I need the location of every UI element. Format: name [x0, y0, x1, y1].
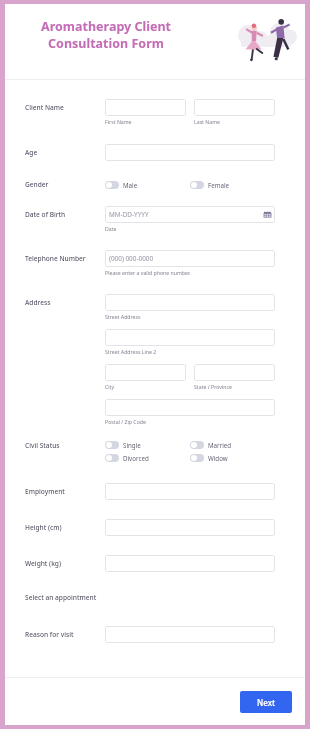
- staticText: Male: [123, 181, 138, 189]
- staticText: Date of Birth: [25, 210, 66, 219]
- button[interactable]: [105, 294, 275, 311]
- staticText: Employment: [25, 487, 65, 496]
- button[interactable]: Female: [190, 181, 275, 189]
- staticText: Please enter a valid phone number.: [105, 269, 191, 276]
- button[interactable]: Single: [105, 441, 190, 449]
- button[interactable]: [105, 555, 275, 572]
- staticText: Street Address Line 2: [105, 348, 157, 355]
- staticText: Last Name: [194, 118, 220, 125]
- button[interactable]: (000) 000-0000: [105, 250, 275, 267]
- staticText: Weight (kg): [25, 559, 61, 568]
- staticText: Divorced: [123, 454, 149, 462]
- button[interactable]: Select an appointment: [25, 593, 97, 602]
- staticText: State / Province: [194, 383, 232, 390]
- button[interactable]: Male: [105, 181, 190, 189]
- staticText: Address: [25, 298, 51, 307]
- staticText: Civil Status: [25, 441, 60, 450]
- staticText: Widow: [208, 454, 228, 462]
- staticText: City: [105, 383, 115, 390]
- staticText: (000) 000-0000: [109, 254, 154, 263]
- button[interactable]: [105, 399, 275, 416]
- button[interactable]: [105, 99, 186, 116]
- other: Pick date: [264, 211, 271, 218]
- staticText: Client Name: [25, 103, 64, 112]
- button[interactable]: Widow: [190, 454, 275, 462]
- button[interactable]: [194, 364, 275, 381]
- button[interactable]: [105, 144, 275, 161]
- staticText: Female: [208, 181, 230, 189]
- button[interactable]: MM-DD-YYYY: [105, 206, 275, 223]
- button[interactable]: [105, 329, 275, 346]
- staticText: Reason for visit: [25, 630, 74, 639]
- button[interactable]: [105, 626, 275, 643]
- staticText: Age: [25, 148, 38, 157]
- staticText: Height (cm): [25, 523, 62, 532]
- button[interactable]: [105, 519, 275, 536]
- staticText: Single: [123, 441, 141, 449]
- staticText: Date: [105, 225, 117, 232]
- staticText: Gender: [25, 180, 49, 189]
- button[interactable]: Married: [190, 441, 275, 449]
- button[interactable]: Next: [240, 691, 292, 713]
- staticText: MM-DD-YYYY: [109, 210, 149, 219]
- staticText: Aromatherapy Client Consultation Form: [41, 18, 171, 51]
- button[interactable]: [194, 99, 275, 116]
- button[interactable]: [105, 483, 275, 500]
- staticText: Street Address: [105, 313, 141, 320]
- staticText: First Name: [105, 118, 132, 125]
- staticText: Telephone Number: [25, 254, 86, 263]
- staticText: Postal / Zip Code: [105, 418, 146, 425]
- button[interactable]: Divorced: [105, 454, 190, 462]
- staticText: Married: [208, 441, 232, 449]
- button[interactable]: [105, 364, 186, 381]
- staticText: Next: [257, 697, 276, 708]
- staticText: Select an appointment: [25, 593, 97, 602]
